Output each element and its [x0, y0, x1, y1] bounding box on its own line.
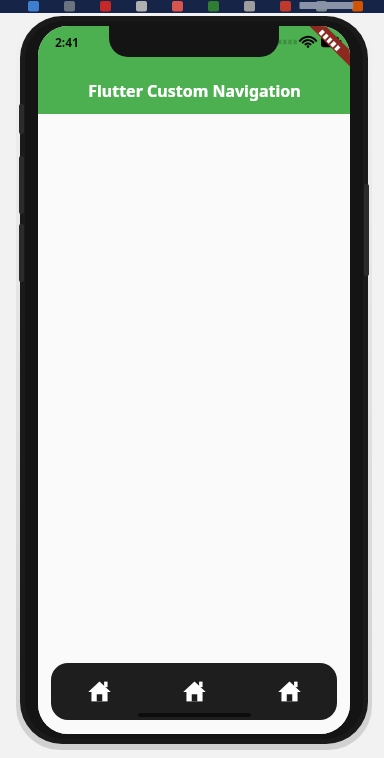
- button[interactable]: Home tab 1: [51, 663, 147, 720]
- button[interactable]: Home tab 2: [147, 663, 242, 720]
- staticText: 2:41: [55, 34, 79, 50]
- button[interactable]: Home tab 3: [242, 663, 337, 720]
- staticText: Flutter Custom Navigation: [88, 80, 301, 102]
